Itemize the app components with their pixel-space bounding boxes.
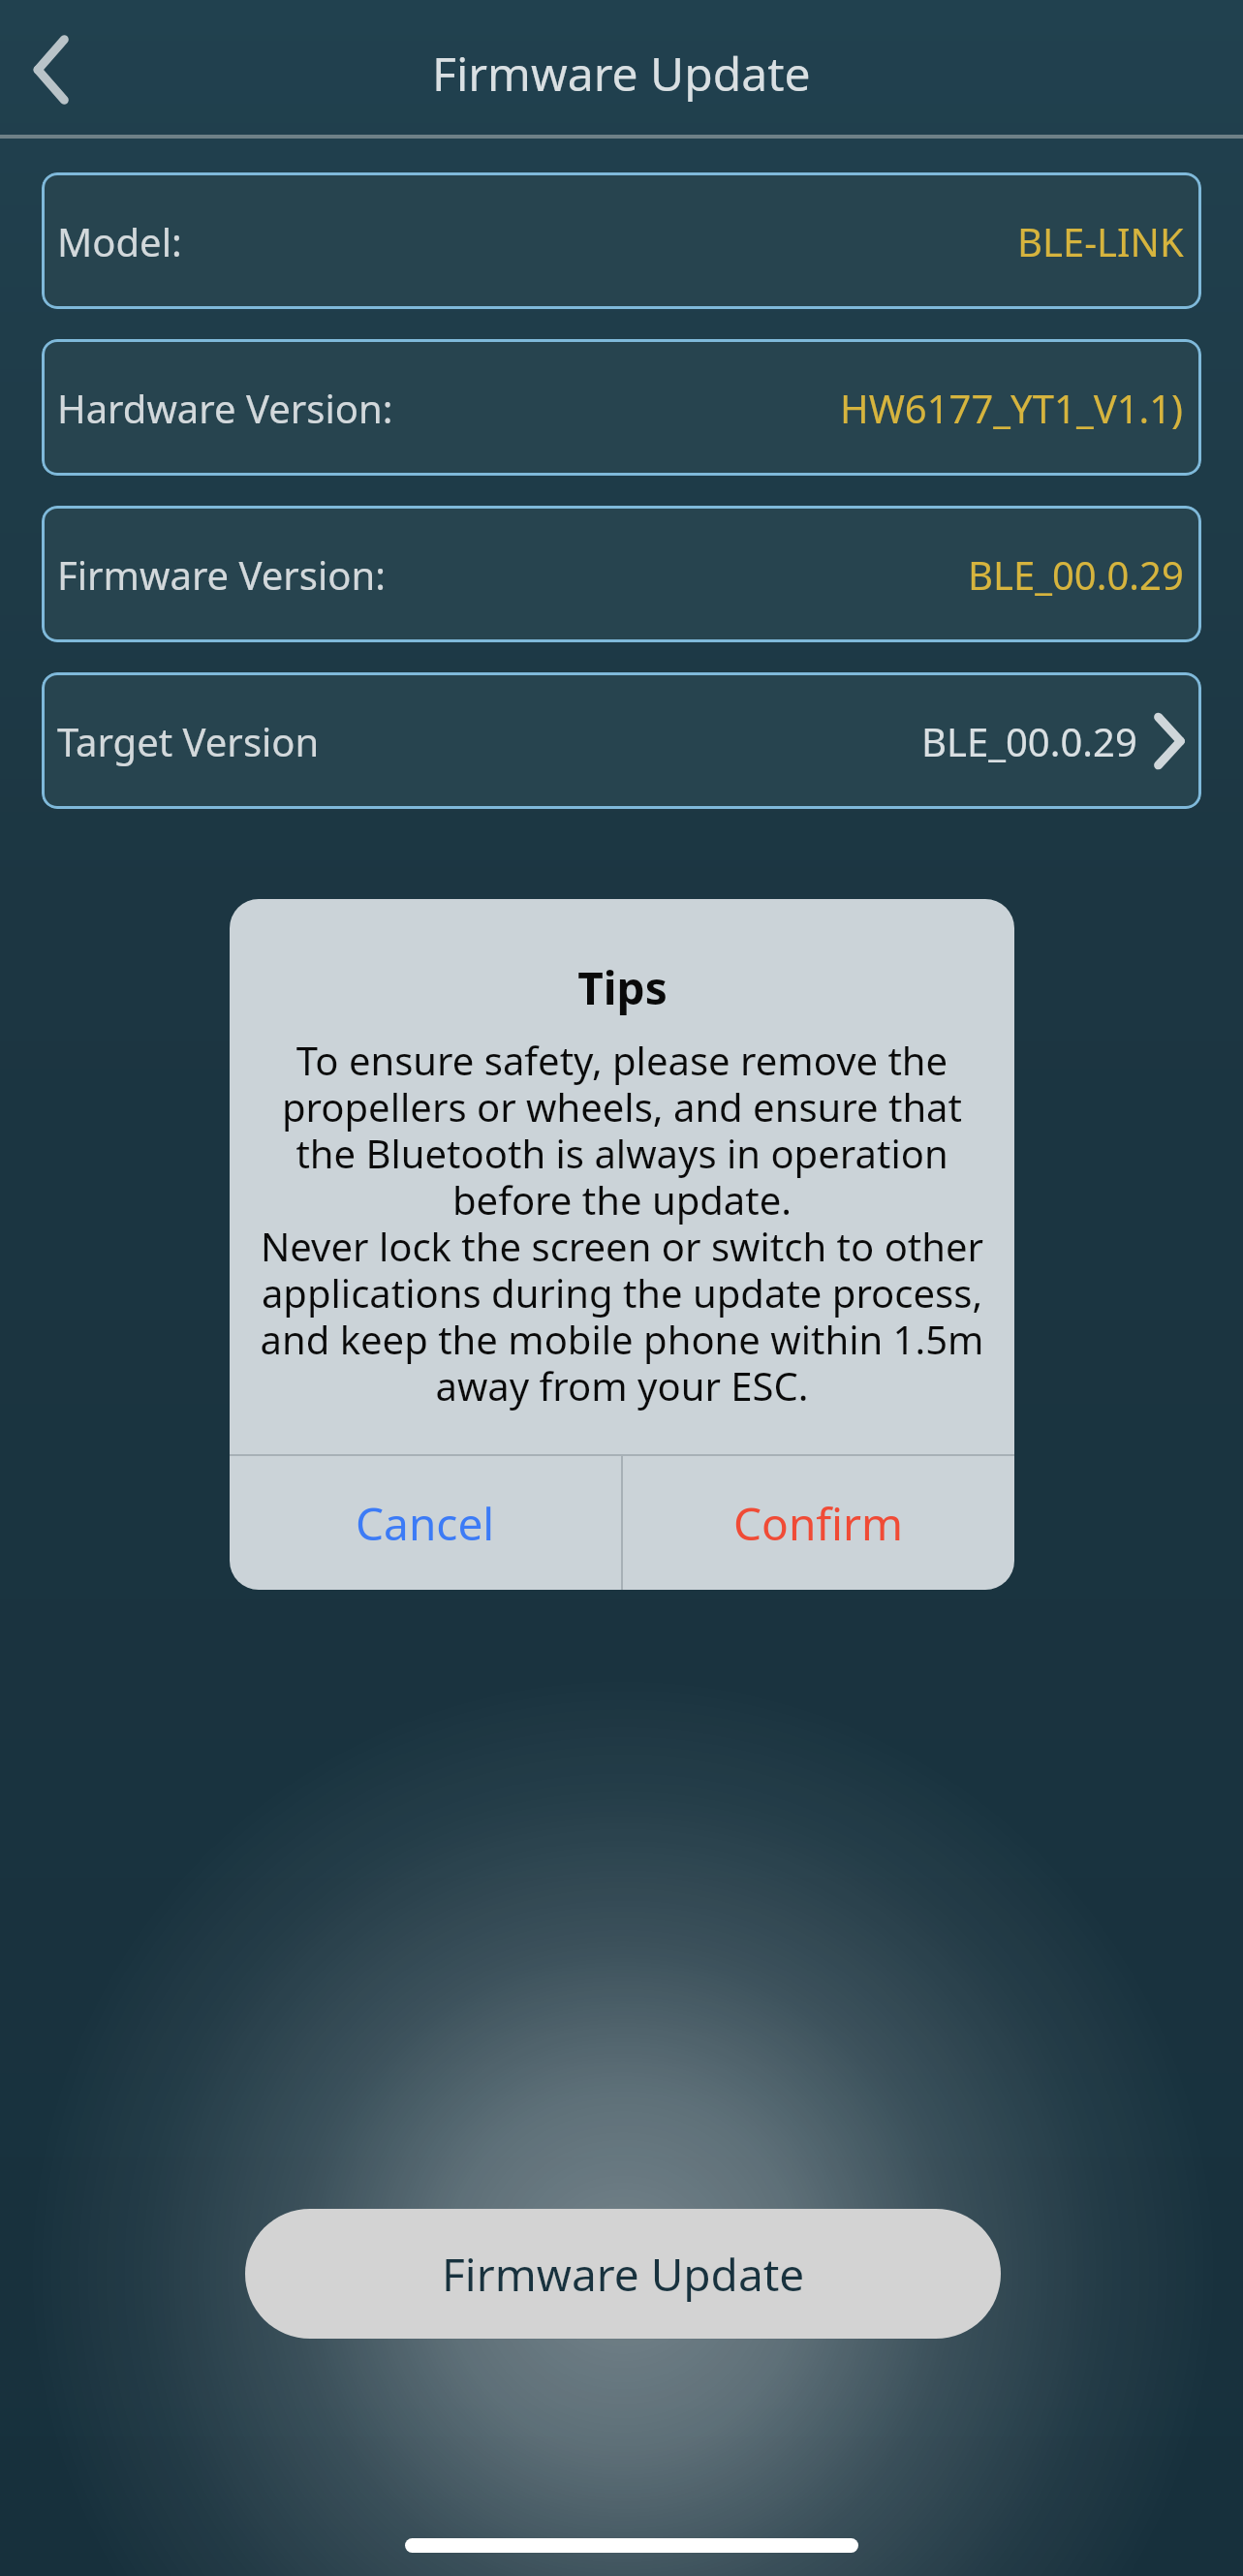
staticText: Model: (57, 215, 182, 267)
staticText: Firmware Update (442, 2244, 805, 2305)
staticText: BLE_00.0.29 (968, 548, 1184, 601)
staticText: Target Version (57, 715, 320, 767)
staticText: BLE-LINK (1017, 215, 1184, 267)
button[interactable]: Confirm (623, 1456, 1014, 1590)
staticText: Tips (577, 957, 668, 1018)
staticText: Hardware Version: (57, 382, 393, 434)
staticText: HW6177_YT1_V1.1) (840, 382, 1184, 434)
staticText: BLE_00.0.29 (921, 715, 1137, 767)
staticText: Firmware Version: (57, 548, 386, 601)
button[interactable]: Model: (42, 172, 1201, 309)
staticText: Cancel (356, 1493, 495, 1554)
staticText: To ensure safety, please remove the prop… (255, 1034, 989, 1412)
button[interactable]: Hardware Version: (42, 339, 1201, 476)
button[interactable]: Back (8, 16, 97, 123)
button[interactable]: Cancel (230, 1456, 621, 1590)
staticText: Confirm (733, 1493, 904, 1554)
button[interactable]: Firmware Version: (42, 506, 1201, 642)
staticText: Firmware Update (432, 42, 811, 105)
button[interactable]: Firmware Update (245, 2209, 1001, 2339)
button[interactable]: Target Version (42, 672, 1201, 809)
